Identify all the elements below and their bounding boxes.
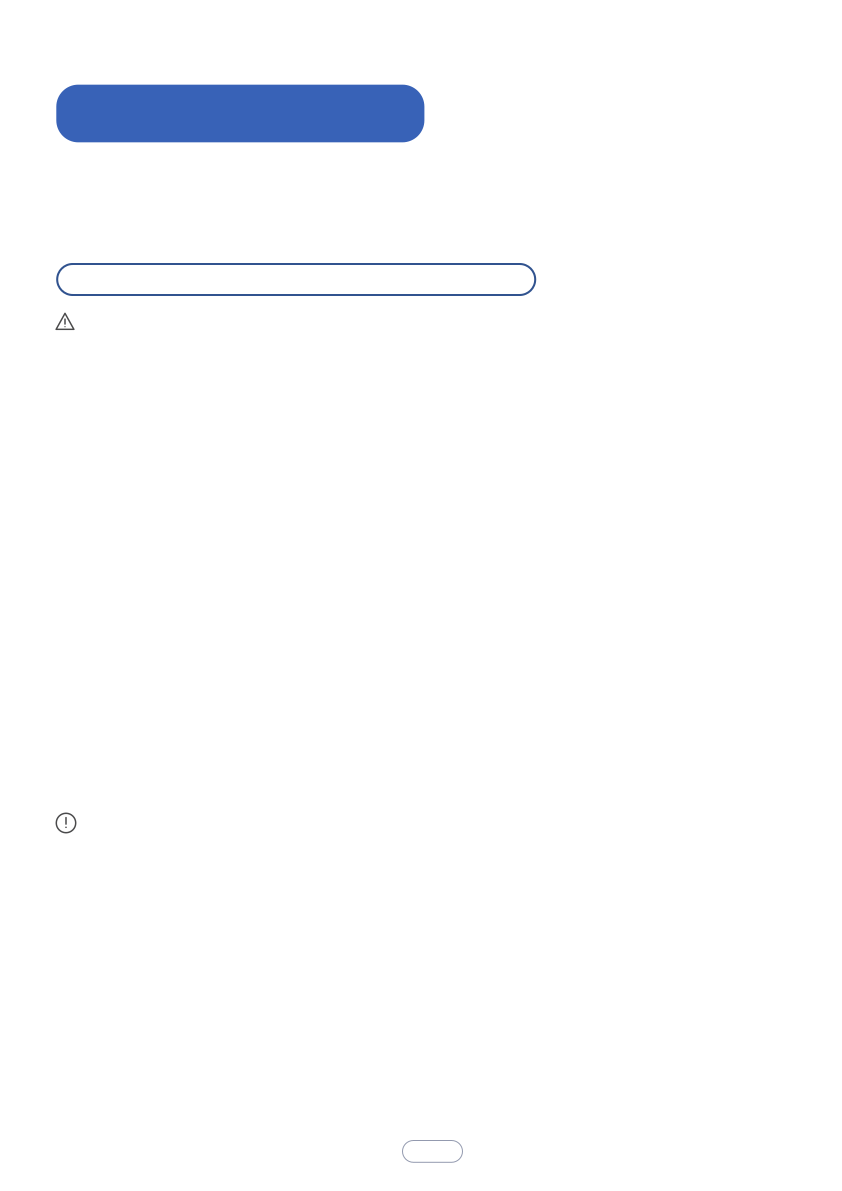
button[interactable]: Continue	[56, 85, 424, 142]
button[interactable]: Text field	[57, 264, 535, 295]
button[interactable]: Dismiss	[402, 1140, 462, 1162]
